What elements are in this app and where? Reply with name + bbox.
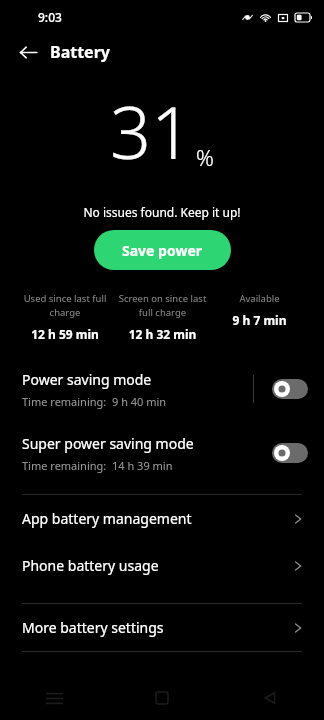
staticText: Save power	[122, 241, 203, 260]
button[interactable]: Save power	[94, 230, 231, 270]
button[interactable]: App battery management	[0, 495, 324, 542]
staticText: 31	[110, 82, 193, 180]
staticText: App battery management	[22, 509, 292, 528]
staticText: Power saving mode	[22, 370, 152, 389]
button[interactable]: More battery settings	[0, 604, 324, 651]
button[interactable]: Phone battery usage	[0, 542, 324, 589]
staticText: 12 h 59 min	[16, 326, 114, 342]
staticText: %	[196, 142, 214, 172]
staticText: Time remaining: 14 h 39 min	[22, 458, 173, 473]
staticText: 9 h 7 min	[211, 312, 308, 328]
staticText: Available	[215, 292, 304, 305]
staticText: 12 h 32 min	[114, 326, 211, 342]
staticText: Used since last full charge	[20, 292, 110, 319]
staticText: Super power saving mode	[22, 434, 194, 453]
button[interactable]: Recent apps	[0, 676, 108, 720]
button[interactable]: Super power saving mode	[272, 443, 308, 463]
staticText: Screen on since last full charge	[118, 292, 207, 319]
staticText: More battery settings	[22, 618, 292, 637]
staticText: Battery	[50, 41, 110, 63]
staticText: Time remaining: 9 h 40 min	[22, 394, 167, 409]
staticText: 9:03	[38, 9, 62, 25]
button[interactable]: Power saving mode	[0, 364, 324, 414]
button[interactable]: Back	[10, 34, 46, 70]
button[interactable]: Super power saving mode	[0, 428, 324, 478]
button[interactable]: Power saving mode	[272, 379, 308, 399]
staticText: No issues found. Keep it up!	[0, 204, 324, 220]
staticText: Phone battery usage	[22, 556, 292, 575]
